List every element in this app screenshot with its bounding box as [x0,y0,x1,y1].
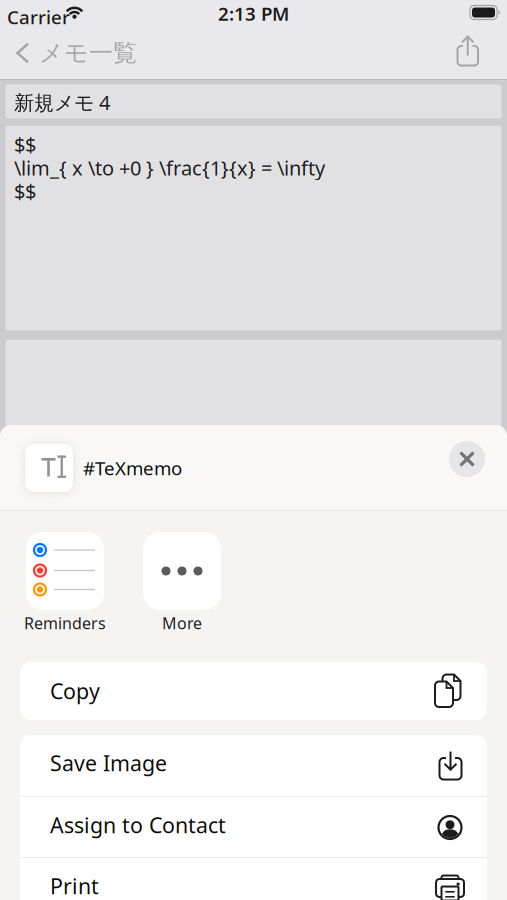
button[interactable]: Share [446,26,490,75]
staticText: メモ一覧 [39,38,137,68]
button[interactable]: Print [20,858,487,900]
staticText: 新規メモ 4 [14,89,110,116]
staticText: Save Image [50,749,167,777]
button[interactable]: More [122,532,242,632]
button[interactable]: Back [0,28,165,77]
staticText: Carrier [7,4,70,29]
staticText: Assign to Contact [50,811,226,839]
staticText: 2:13 PM [218,1,289,26]
staticText: $$ \lim_{ x \to +0 } \frac{1}{x} = \inft… [14,131,325,204]
staticText: Print [50,872,99,900]
button[interactable]: Reminders [5,532,125,632]
button[interactable]: Save Image [20,735,487,796]
button[interactable]: Assign to Contact [20,797,487,858]
staticText: #TeXmemo [83,455,182,480]
button[interactable]: Copy [20,662,487,720]
staticText: Copy [50,677,100,705]
staticText: More [162,612,202,634]
button[interactable]: Close [449,441,485,477]
staticText: Reminders [24,612,106,634]
